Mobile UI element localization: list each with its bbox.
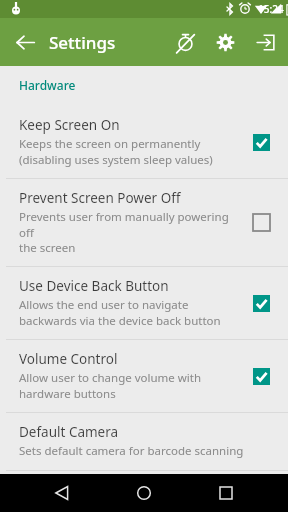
staticText: Prevents user from manually powering off… xyxy=(19,209,245,255)
button[interactable]: Enabled xyxy=(253,134,270,151)
staticText: Allows the end user to navigate backward… xyxy=(19,297,221,328)
button[interactable]: Disabled xyxy=(253,214,270,231)
staticText: Keeps the screen on permanently (disabli… xyxy=(19,136,213,167)
staticText: Use Device Back Button xyxy=(19,277,169,295)
button[interactable]: Prevent Screen Power Off xyxy=(0,179,288,266)
button[interactable]: Default Camera xyxy=(0,413,288,470)
staticText: Sets default camera for barcode scanning xyxy=(19,443,244,459)
button[interactable]: Back xyxy=(6,23,44,61)
button[interactable]: Recents xyxy=(206,474,246,512)
staticText: Keep Screen On xyxy=(19,116,120,134)
button[interactable]: Exit xyxy=(245,22,285,62)
staticText: Hardware xyxy=(19,77,76,93)
staticText: Default Camera xyxy=(19,423,119,441)
staticText: 15:24 xyxy=(258,2,284,16)
staticText: Volume Control xyxy=(19,350,118,368)
staticText: Prevent Screen Power Off xyxy=(19,189,181,207)
button[interactable]: Disable timer xyxy=(165,22,205,62)
button[interactable]: Settings xyxy=(205,22,245,62)
button[interactable]: Volume Control xyxy=(0,340,288,412)
staticText: Allow user to change volume with hardwar… xyxy=(19,370,202,401)
button[interactable]: Keep Screen On xyxy=(0,106,288,178)
button[interactable]: Enabled xyxy=(253,368,270,385)
button[interactable]: Home xyxy=(124,474,164,512)
staticText: Settings xyxy=(49,31,116,54)
button[interactable]: Enabled xyxy=(253,295,270,312)
button[interactable]: Use Device Back Button xyxy=(0,267,288,339)
button[interactable]: Back xyxy=(42,474,82,512)
